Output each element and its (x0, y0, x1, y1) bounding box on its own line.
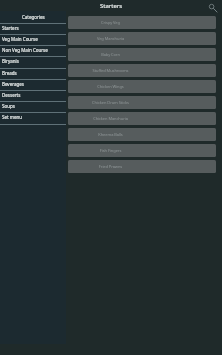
staticText: Crispy Veg (68, 20, 153, 25)
staticText: Non Veg Main Course (2, 47, 48, 53)
staticText: Baby Corn (68, 52, 153, 57)
button[interactable]: Fish Fingers (68, 144, 216, 157)
staticText: Starters (2, 25, 19, 31)
button[interactable]: Non Veg Main Course (0, 46, 66, 56)
staticText: Kheema Balls (68, 132, 153, 137)
button[interactable]: Biryanis (0, 57, 66, 68)
staticText: Soups (2, 103, 15, 109)
staticText: Fried Prawns (68, 164, 153, 169)
button[interactable]: Desserts (0, 91, 66, 101)
button[interactable]: Chicken Manchuria (68, 112, 216, 125)
button[interactable]: Kheema Balls (68, 128, 216, 141)
button[interactable]: Veg Main Course (0, 35, 66, 45)
button[interactable]: Breads (0, 69, 66, 79)
button[interactable]: Baby Corn (68, 48, 216, 61)
button[interactable]: Chicken Wings (68, 80, 216, 93)
button[interactable]: Set menu (0, 113, 66, 124)
staticText: Chicken Wings (68, 84, 153, 89)
button[interactable]: Soups (0, 102, 66, 112)
staticText: Chicken Manchuria (68, 116, 153, 121)
button[interactable]: Crispy Veg (68, 16, 216, 29)
staticText: Beverages (2, 81, 24, 87)
staticText: Breads (2, 70, 17, 76)
staticText: Fish Fingers (68, 148, 153, 153)
staticText: Veg Manchuria (68, 36, 153, 41)
staticText: Biryanis (2, 58, 19, 64)
staticText: Categories (22, 14, 45, 20)
button[interactable]: Search (207, 1, 220, 14)
button[interactable]: Chicken Drum Sticks (68, 96, 216, 109)
staticText: Desserts (2, 92, 21, 98)
staticText: Set menu (2, 114, 23, 120)
button[interactable]: Beverages (0, 80, 66, 90)
staticText: Starters (100, 2, 123, 10)
button[interactable]: Fried Prawns (68, 160, 216, 173)
button[interactable]: Stuffed Mushrooms (68, 64, 216, 77)
staticText: Stuffed Mushrooms (68, 68, 153, 73)
staticText: Chicken Drum Sticks (68, 100, 153, 105)
button[interactable]: Veg Manchuria (68, 32, 216, 45)
button[interactable]: Starters (0, 24, 66, 34)
staticText: Veg Main Course (2, 36, 38, 42)
